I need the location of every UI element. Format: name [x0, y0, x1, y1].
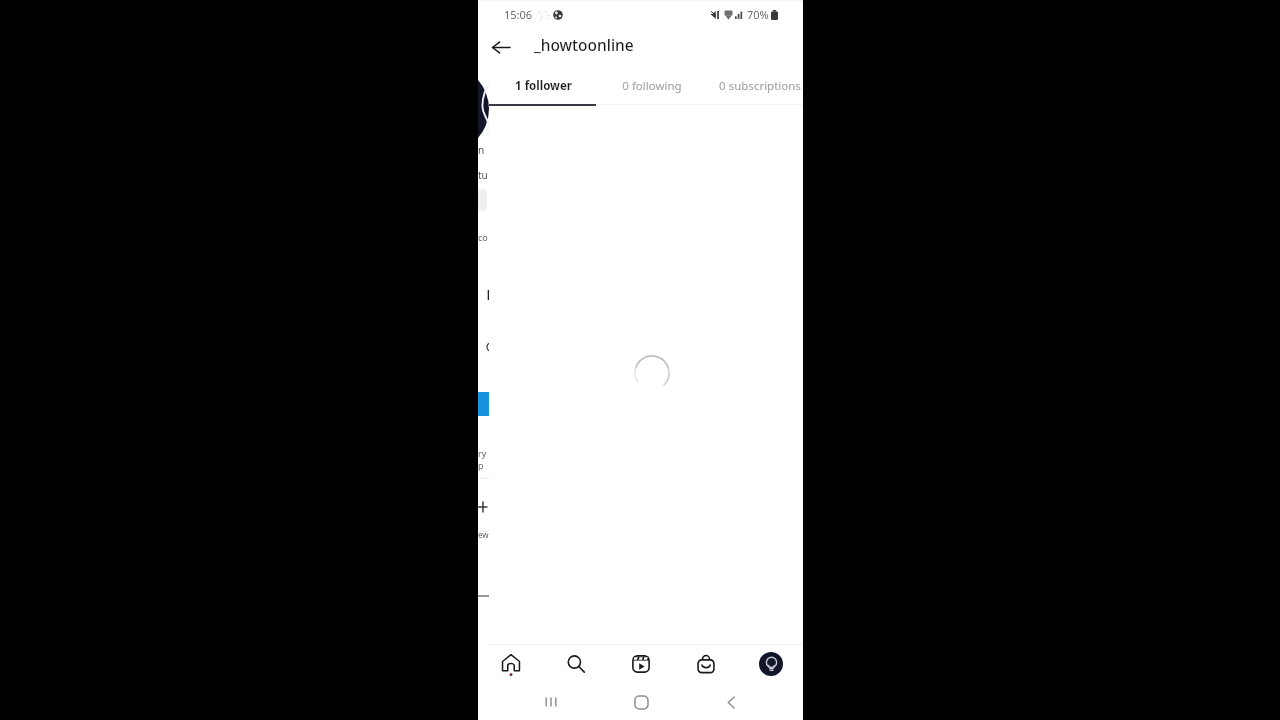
staticText: co	[478, 231, 488, 243]
button[interactable]: Back	[483, 29, 519, 65]
button[interactable]: Search	[543, 642, 608, 685]
staticText: ry	[478, 447, 487, 459]
staticText: n	[478, 143, 485, 157]
staticText: ew	[478, 529, 489, 540]
button[interactable]: Back	[686, 688, 776, 720]
button[interactable]: Home	[478, 642, 543, 685]
staticText: 70%	[747, 7, 769, 22]
button[interactable]: 0 subscriptions	[706, 68, 803, 104]
button[interactable]: Reels	[608, 642, 673, 685]
button[interactable]: Profile	[738, 642, 803, 685]
button[interactable]: Home	[596, 688, 686, 720]
staticText: 15:06	[504, 7, 533, 22]
staticText: tu	[478, 168, 488, 182]
staticText: 0 following	[622, 78, 682, 94]
button[interactable]: 1 follower	[489, 68, 598, 104]
staticText: 0 subscriptions	[719, 78, 801, 94]
button[interactable]: Shop	[673, 642, 738, 685]
staticText: 1 follower	[515, 78, 572, 94]
button[interactable]: 0 following	[598, 68, 706, 104]
staticText: p	[478, 459, 484, 471]
staticText: _howtoonline	[534, 34, 634, 55]
button[interactable]: Recents	[505, 688, 596, 720]
